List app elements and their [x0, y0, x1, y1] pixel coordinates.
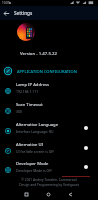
staticText: Scan Timeout	[16, 102, 43, 108]
button[interactable]: Scan Timeout	[0, 98, 98, 118]
button[interactable]: Home	[41, 189, 56, 200]
staticText: Alternative Language	[16, 122, 59, 128]
staticText: Interface Language: RU	[16, 129, 54, 134]
staticText: Developer Mode	[16, 161, 49, 167]
staticText: UI for little screen is Off	[16, 149, 54, 154]
button[interactable]: Developer Mode switch	[81, 162, 91, 172]
button[interactable]: Recent apps	[19, 189, 34, 200]
staticText: Lamp IP Address	[16, 82, 50, 88]
staticText: Developer Mode is Off	[16, 168, 52, 173]
button[interactable]: Alternative UI switch	[81, 143, 91, 153]
staticText: 10:05	[2, 1, 10, 5]
staticText: Alternative UI	[16, 142, 43, 148]
staticText: Version - 1.47.5.22	[20, 50, 57, 56]
button[interactable]: Lamp IP Address	[0, 78, 98, 98]
button[interactable]: Alternative Language	[0, 118, 98, 138]
staticText: © 2021 Andrey Tomshin. Commercial	[21, 178, 77, 182]
staticText: 192.168.1.111	[16, 89, 39, 94]
staticText: Settings	[14, 10, 33, 16]
staticText: Design and Programming by Vortigaunt	[19, 183, 79, 187]
staticText: APPLICATION CONFIGURATION	[17, 69, 77, 74]
button[interactable]: Back	[0, 6, 12, 20]
button[interactable]: Back	[63, 189, 78, 200]
button[interactable]: Alternative UI	[0, 138, 98, 158]
button[interactable]: Developer Mode	[0, 157, 98, 177]
staticText: 300	[16, 109, 22, 114]
button[interactable]: Alternative Language switch	[81, 123, 91, 133]
